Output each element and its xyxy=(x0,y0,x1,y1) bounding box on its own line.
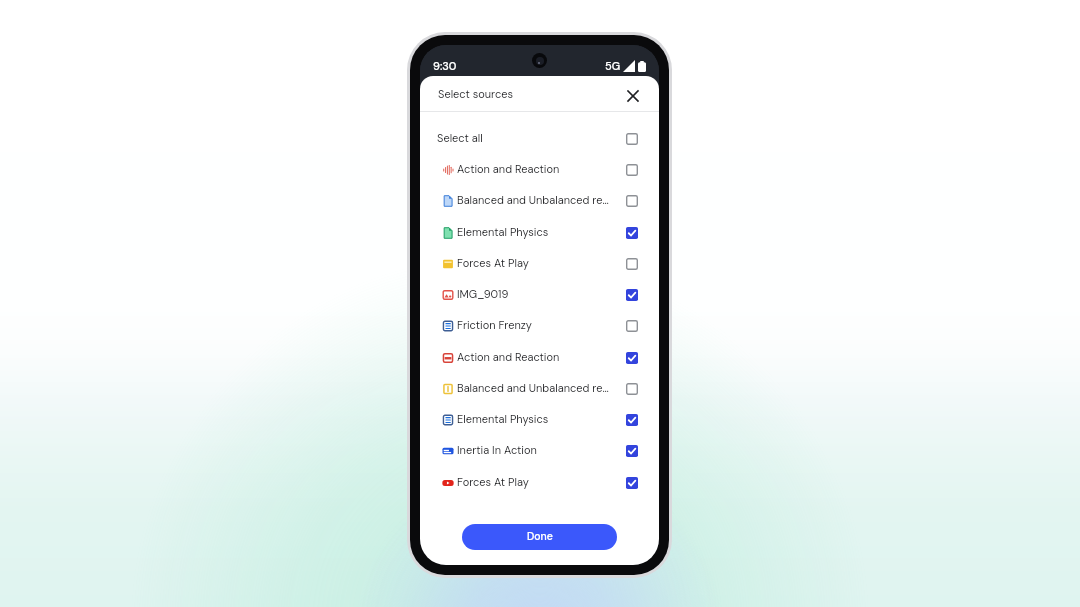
button[interactable]: Balanced and Unbalanced re… xyxy=(420,376,659,400)
button[interactable]: Friction Frenzy xyxy=(420,313,659,337)
staticText: Forces At Play xyxy=(457,256,619,270)
button[interactable]: Elemental Physics xyxy=(420,220,659,244)
button[interactable]: Action and Reaction xyxy=(420,345,659,369)
staticText: 9:30 xyxy=(433,59,457,73)
staticText: Balanced and Unbalanced re… xyxy=(457,381,619,395)
button[interactable]: Select all xyxy=(420,126,659,150)
button[interactable]: Elemental Physics xyxy=(420,407,659,431)
staticText: Inertia In Action xyxy=(457,443,619,457)
button[interactable]: Action and Reaction xyxy=(420,157,659,181)
button[interactable]: Forces At Play xyxy=(420,251,659,275)
staticText: IMG_9019 xyxy=(457,287,619,301)
staticText: Action and Reaction xyxy=(457,162,619,176)
staticText: Elemental Physics xyxy=(457,412,619,426)
button[interactable]: Close xyxy=(622,85,644,107)
staticText: 5G xyxy=(605,59,621,73)
staticText: Select sources xyxy=(438,87,513,101)
staticText: Balanced and Unbalanced re… xyxy=(457,193,619,207)
staticText: Elemental Physics xyxy=(457,225,619,239)
button[interactable]: Inertia In Action xyxy=(420,438,659,462)
button[interactable]: Forces At Play xyxy=(420,470,659,494)
staticText: Done xyxy=(527,530,553,544)
staticText: Select all xyxy=(437,131,619,145)
staticText: Forces At Play xyxy=(457,475,619,489)
staticText: Friction Frenzy xyxy=(457,318,619,332)
button[interactable]: Done xyxy=(462,524,617,550)
button[interactable]: Balanced and Unbalanced re… xyxy=(420,188,659,212)
staticText: Action and Reaction xyxy=(457,350,619,364)
button[interactable]: IMG_9019 xyxy=(420,282,659,306)
